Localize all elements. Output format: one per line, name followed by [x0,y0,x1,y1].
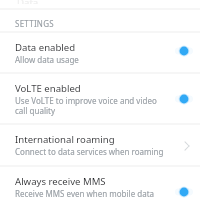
button[interactable]: VoLTE enabled [0,74,200,123]
staticText: SETTINGS [15,18,54,29]
staticText: Data [17,0,39,4]
button[interactable]: Data enabled [171,41,197,61]
staticText: Always receive MMS [15,175,106,188]
staticText: Allow data usage [15,54,79,65]
staticText: Receive MMS even when mobile data is off [15,188,160,199]
staticText: Data enabled [15,41,76,54]
staticText: International roaming [15,133,115,146]
button[interactable]: Always receive MMS [0,167,200,200]
staticText: Use VoLTE to improve voice and video cal… [15,95,167,116]
staticText: Connect to data services when roaming [15,146,164,157]
button[interactable]: International roaming [174,136,200,156]
button[interactable]: Always receive MMS [171,182,197,200]
button[interactable]: Data enabled [0,33,200,72]
staticText: VoLTE enabled [15,82,81,95]
button[interactable]: VoLTE enabled [171,89,197,109]
button[interactable]: International roaming [0,125,200,165]
